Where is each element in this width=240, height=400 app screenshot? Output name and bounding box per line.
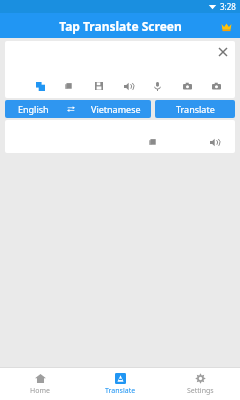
- button[interactable]: Copy: [31, 77, 49, 95]
- button[interactable]: Premium: [218, 18, 234, 34]
- button[interactable]: Camera: [178, 77, 196, 95]
- staticText: 3:28: [220, 1, 236, 12]
- button[interactable]: Close: [215, 44, 231, 60]
- staticText: Settings: [187, 386, 214, 396]
- staticText: English: [18, 103, 49, 115]
- button[interactable]: Translate: [155, 100, 235, 118]
- button[interactable]: Speak: [119, 77, 137, 95]
- button[interactable]: Screenshot: [207, 77, 225, 95]
- button[interactable]: English: [5, 100, 62, 118]
- button[interactable]: Speak result: [205, 133, 223, 151]
- button[interactable]: Vietnamese: [80, 100, 151, 118]
- button[interactable]: Microphone: [148, 77, 166, 95]
- staticText: Home: [30, 386, 50, 396]
- button[interactable]: Swap languages: [62, 100, 80, 118]
- button[interactable]: Translate: [80, 368, 160, 400]
- button[interactable]: Save: [90, 77, 108, 95]
- staticText: Translate: [105, 386, 136, 396]
- button[interactable]: Settings: [160, 368, 240, 400]
- button[interactable]: Copy result: [144, 133, 162, 151]
- button[interactable]: Share: [60, 77, 78, 95]
- staticText: Tap Translate Screen: [59, 18, 182, 34]
- staticText: Translate: [176, 103, 215, 115]
- staticText: Vietnamese: [91, 103, 141, 115]
- button[interactable]: Home: [0, 368, 80, 400]
